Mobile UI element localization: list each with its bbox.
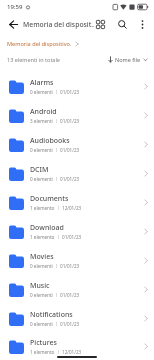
staticText: 0 elementi — [30, 292, 53, 298]
button[interactable]: Download — [0, 217, 154, 246]
staticText: 01/01/23 — [62, 234, 82, 240]
staticText: 19:59 — [7, 3, 23, 11]
staticText: Documents — [30, 194, 69, 204]
button[interactable]: Memoria del dispositivo. — [7, 40, 72, 48]
staticText: 01/01/23 — [60, 118, 80, 124]
button[interactable]: Android — [0, 101, 154, 130]
button[interactable]: Movies — [0, 246, 154, 275]
staticText: 0 elementi — [30, 321, 53, 327]
button[interactable] — [137, 19, 147, 29]
staticText: 01/01/23 — [60, 321, 80, 327]
button[interactable]: DCIM — [0, 159, 154, 188]
staticText: Memoria del disposit… — [23, 20, 94, 29]
staticText: 3 elementi — [30, 118, 53, 124]
button[interactable] — [94, 18, 107, 31]
staticText: Download — [30, 223, 64, 233]
button[interactable]: Music — [0, 275, 154, 304]
staticText: Audiobooks — [30, 136, 70, 146]
staticText: 0 elementi — [30, 147, 53, 153]
staticText: Android — [30, 107, 57, 117]
staticText: Music — [30, 281, 50, 291]
button[interactable] — [116, 18, 129, 31]
staticText: Alarms — [30, 78, 54, 88]
staticText: 1 elemento — [30, 205, 55, 211]
button[interactable]: Nome file — [108, 56, 148, 63]
button[interactable]: Audiobooks — [0, 130, 154, 159]
staticText: 1 elemento — [30, 349, 55, 355]
staticText: 0 elementi — [30, 176, 53, 182]
button[interactable]: Notifications — [0, 304, 154, 333]
staticText: 01/01/23 — [60, 176, 80, 182]
staticText: 01/01/23 — [60, 147, 80, 153]
staticText: 12/01/23 — [62, 349, 82, 355]
button[interactable]: Pictures — [0, 333, 154, 360]
staticText: 01/01/23 — [60, 263, 80, 269]
staticText: Nome file — [115, 56, 141, 63]
button[interactable]: Alarms — [0, 72, 154, 101]
staticText: Movies — [30, 252, 54, 262]
staticText: 1 elemento — [30, 234, 55, 240]
staticText: 12/01/23 — [62, 205, 82, 211]
staticText: 0 elementi — [30, 263, 53, 269]
staticText: 01/01/23 — [60, 292, 80, 298]
staticText: Notifications — [30, 310, 73, 320]
staticText: DCIM — [30, 165, 49, 175]
button[interactable] — [7, 18, 19, 30]
staticText: Pictures — [30, 338, 57, 348]
staticText: 13 elementi in totale — [7, 56, 60, 63]
staticText: 0 elementi — [30, 89, 53, 95]
button[interactable]: Documents — [0, 188, 154, 217]
staticText: 01/01/23 — [60, 89, 80, 95]
